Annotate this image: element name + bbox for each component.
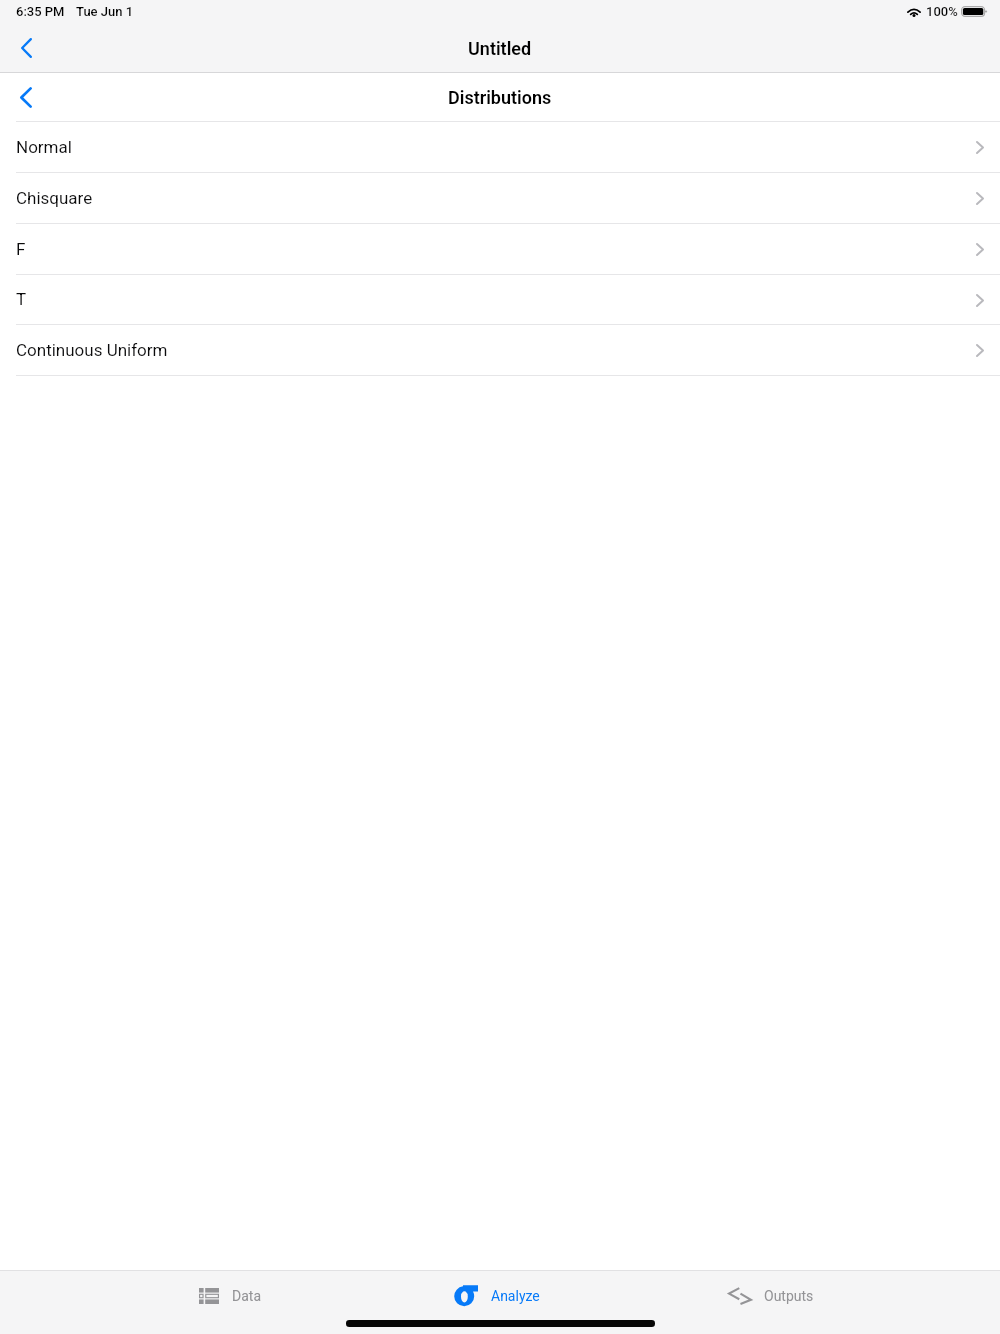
staticText: T — [16, 289, 27, 309]
button[interactable]: Normal — [0, 122, 1000, 173]
staticText: Chisquare — [16, 188, 93, 208]
button[interactable]: Data — [199, 1277, 261, 1315]
button[interactable]: Outputs — [728, 1277, 814, 1315]
staticText: Analyze — [491, 1288, 540, 1304]
staticText: Tue Jun 1 — [76, 4, 134, 19]
button[interactable]: Back — [8, 79, 44, 115]
staticText: Data — [232, 1288, 261, 1304]
button[interactable]: F — [0, 224, 1000, 275]
staticText: Distributions — [448, 87, 552, 108]
button[interactable]: Chisquare — [0, 173, 1000, 224]
staticText: Untitled — [468, 38, 532, 59]
staticText: 100% — [926, 4, 958, 19]
button[interactable]: Analyze — [454, 1277, 540, 1315]
button[interactable]: T — [0, 275, 1000, 325]
button[interactable]: Back — [8, 30, 44, 66]
staticText: Continuous Uniform — [16, 340, 168, 360]
staticText: F — [16, 239, 26, 259]
staticText: 6:35 PM — [16, 4, 65, 19]
button[interactable]: Continuous Uniform — [0, 325, 1000, 376]
staticText: Outputs — [764, 1288, 814, 1304]
staticText: Normal — [16, 137, 72, 157]
